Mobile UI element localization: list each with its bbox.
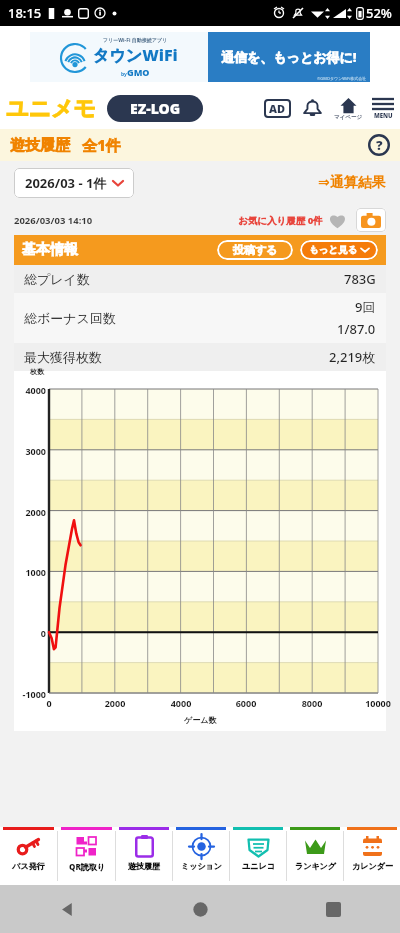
staticText: タウンWiFi [93,44,178,66]
staticText: ゲーム数 [184,715,217,725]
button[interactable]: マイページ [334,97,363,121]
staticText: 2026/03 - 1件 [25,174,107,192]
staticText: 4000 [167,697,195,709]
staticText: 投稿する [233,243,278,257]
button[interactable]: ユニレコ [230,827,286,885]
button[interactable]: 写真 [356,208,386,232]
staticText: AD [269,101,286,116]
button[interactable]: 2026/03 - 1件 [14,168,134,198]
button[interactable]: 総ボーナス回数 [24,293,376,343]
button[interactable]: 履歴 [326,902,341,917]
button[interactable]: パス発行 [0,827,57,885]
button[interactable]: ミッション [173,827,229,885]
staticText: 総プレイ数 [24,271,90,287]
staticText: 1/87.0 [337,320,376,338]
staticText: 2,219枚 [329,348,376,366]
button[interactable]: AD [264,99,291,118]
staticText: 2026/03/03 14:10 [14,214,93,227]
button[interactable]: ヘルプ [368,134,390,156]
button[interactable]: ランキング [287,827,343,885]
staticText: 通信を、もっとお得に! [221,48,357,66]
staticText: 783G [344,270,376,288]
staticText: 2000 [14,506,46,518]
staticText: 3000 [14,445,46,457]
button[interactable]: 最大獲得枚数 [24,343,376,371]
staticText: マイページ [334,114,363,121]
staticText: ? [376,136,383,154]
staticText: 8000 [298,697,326,709]
staticText: 10000 [364,697,392,709]
button[interactable]: お気に入り [329,212,346,229]
staticText: MENU [374,112,393,120]
staticText: ミッション [181,861,222,871]
staticText: お気に入り履歴 0件 [238,214,323,227]
staticText: 6000 [232,697,260,709]
staticText: 4000 [14,384,46,396]
staticText: -1000 [14,688,46,700]
staticText: 総ボーナス回数 [24,310,116,326]
staticText: パス発行 [12,861,45,871]
staticText: もっと見る [309,244,358,256]
staticText: ⇒通算結果 [318,174,386,192]
button[interactable]: メニュー [372,97,394,120]
staticText: 18:15 [8,4,42,22]
staticText: ランキング [295,861,336,871]
staticText: 全1件 [82,135,121,155]
staticText: 最大獲得枚数 [24,349,102,365]
staticText: EZ-LOG [130,99,181,118]
staticText: フリーWi-Fi 自動接続アプリ [103,37,168,44]
button[interactable]: 戻る [59,901,76,918]
staticText: 9回 [355,298,376,316]
button[interactable]: EZ-LOG [107,95,203,122]
staticText: 52% [366,4,392,22]
staticText: GMO [127,66,150,78]
staticText: 1000 [14,566,46,578]
button[interactable]: タウンWiFi 広告 [30,32,370,82]
button[interactable]: ユニメモ ホーム [6,95,97,123]
button[interactable]: もっと見る [300,240,378,260]
staticText: QR読取り [69,861,105,872]
staticText: 遊技履歴 [128,861,160,871]
staticText: ©GMOタウンWiFi株式会社 [317,76,367,81]
button[interactable]: お知らせ [302,98,323,119]
staticText: 遊技履歴 [10,136,70,155]
button[interactable]: 遊技履歴 [116,827,172,885]
staticText: 0 [14,627,46,639]
staticText: 2000 [101,697,129,709]
staticText: ユニメモ [6,95,97,123]
button[interactable]: 総プレイ数 [24,265,376,293]
button[interactable]: QR読取り [58,827,115,885]
button[interactable]: ホーム [192,901,209,918]
staticText: by [121,71,127,78]
button[interactable]: 投稿する [217,240,293,260]
staticText: 0 [35,697,63,709]
staticText: カレンダー [352,861,393,871]
staticText: 基本情報 [22,241,78,259]
button[interactable]: カレンダー [344,827,400,885]
staticText: 枚数 [30,367,44,376]
button[interactable]: ⇒通算結果 [318,174,386,192]
staticText: ユニレコ [242,861,275,871]
